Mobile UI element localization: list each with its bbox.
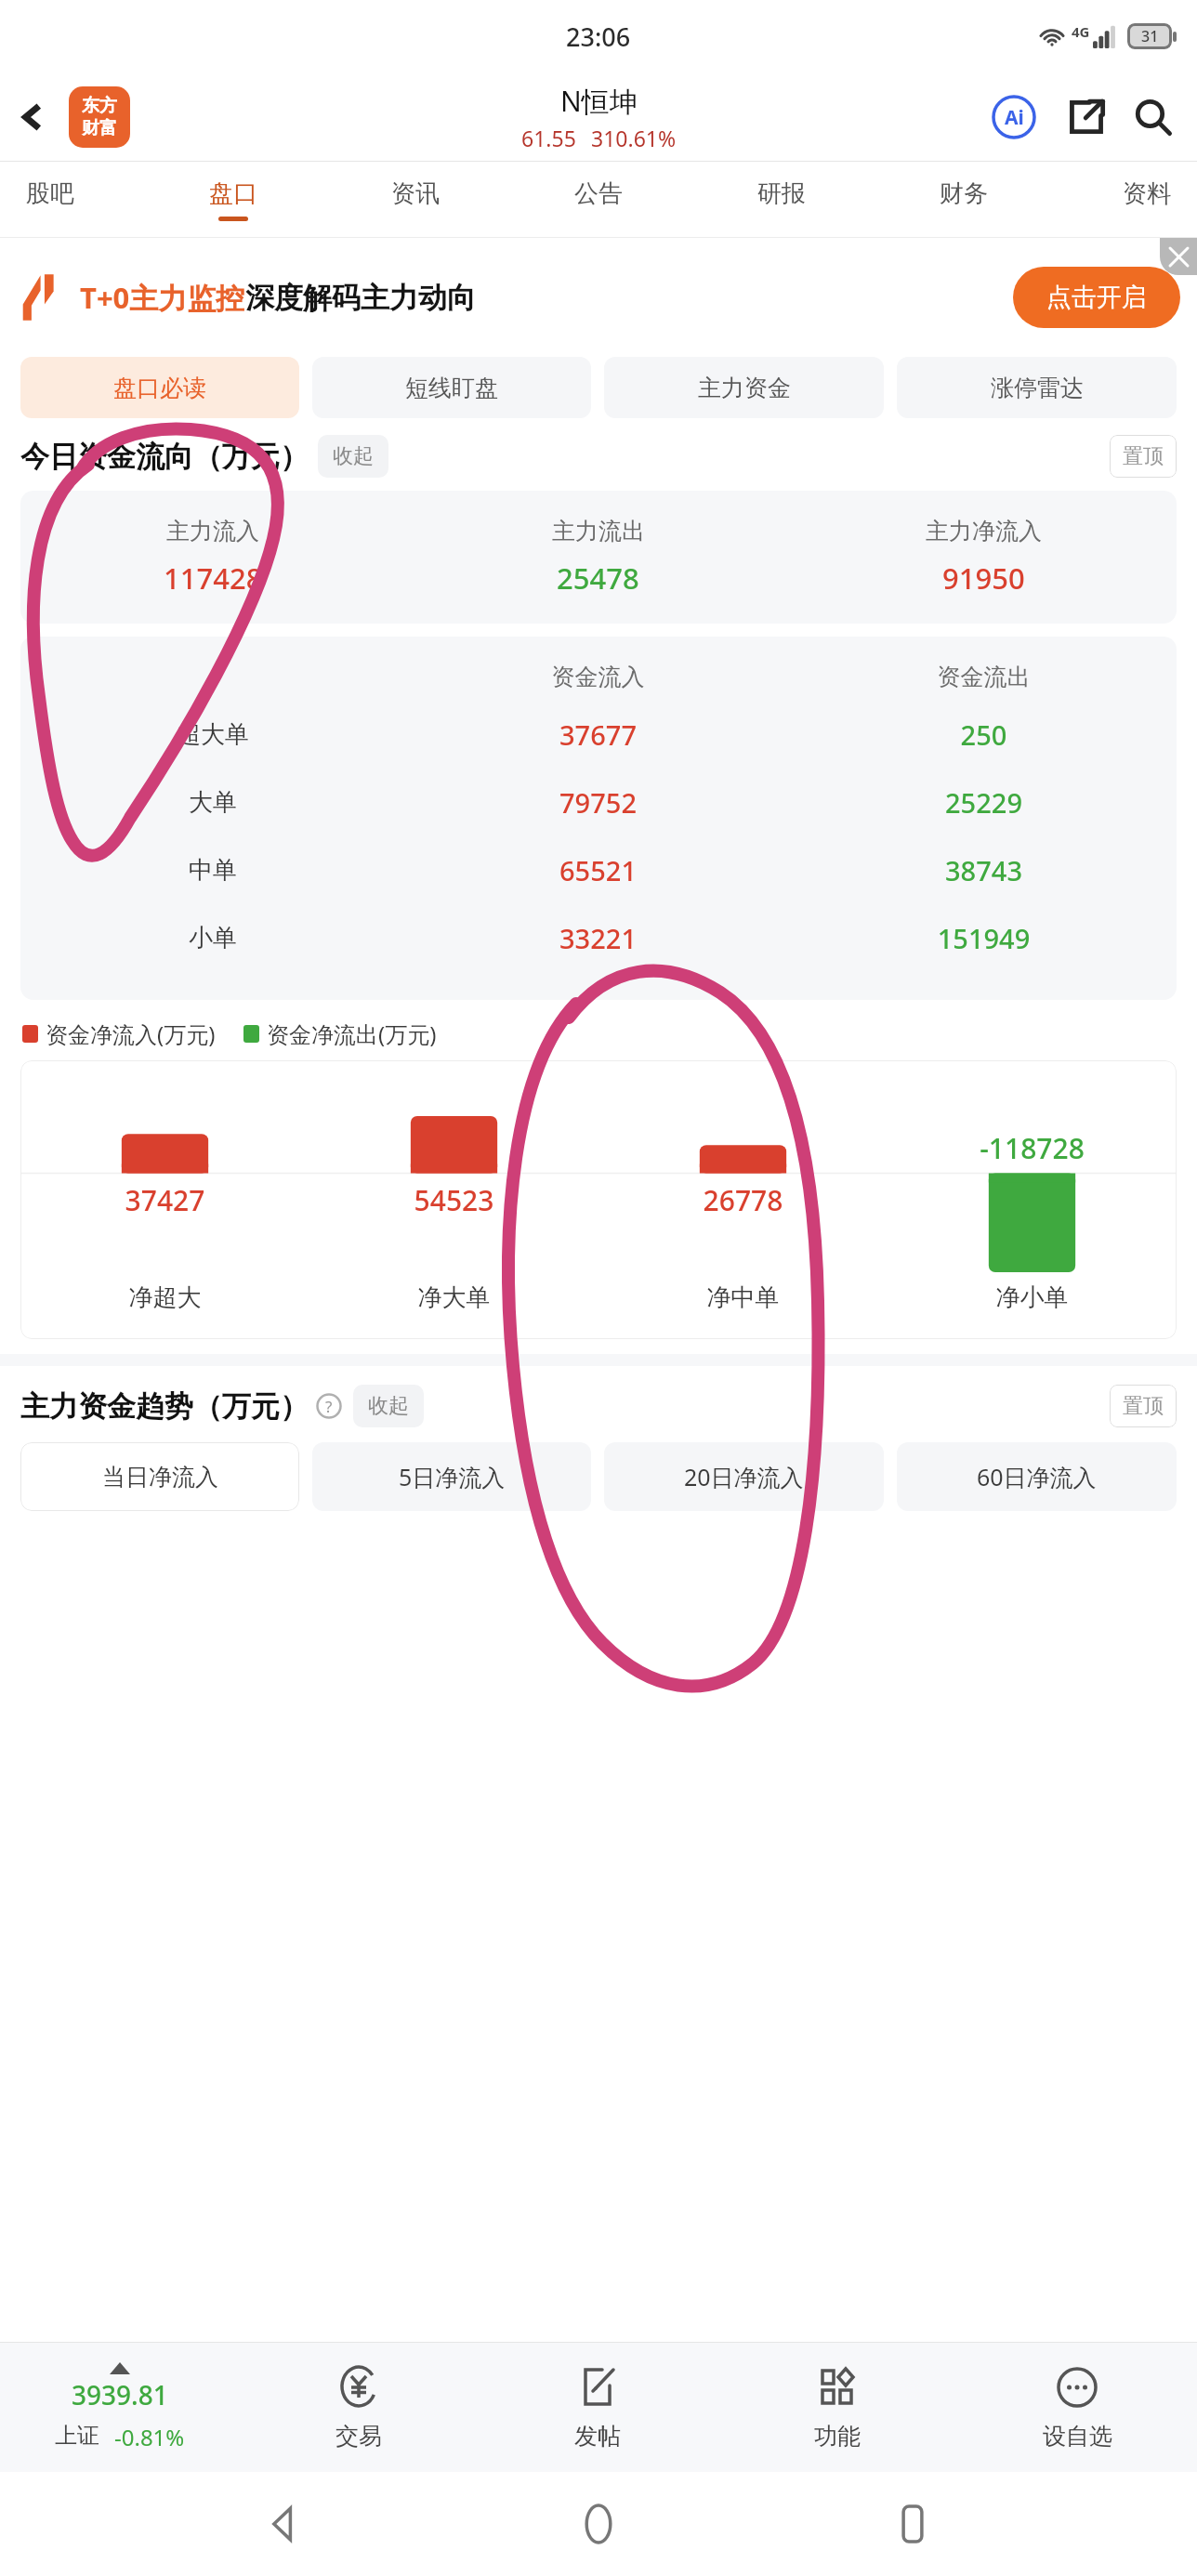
button[interactable]: 5日净流入 bbox=[312, 1442, 591, 1511]
button[interactable]: 置顶 bbox=[1110, 1385, 1177, 1427]
button[interactable]: 关闭广告 bbox=[1160, 238, 1197, 275]
button[interactable]: 公告 bbox=[559, 173, 638, 227]
staticText: 151949 bbox=[791, 920, 1177, 956]
button[interactable]: 盘口必读 bbox=[20, 357, 299, 418]
staticText: 设自选 bbox=[1043, 2422, 1112, 2451]
staticText: 资讯 bbox=[391, 178, 440, 209]
staticText: 主力流入 bbox=[166, 517, 259, 545]
button[interactable]: T+0主力监控 bbox=[20, 238, 1180, 357]
staticText: 资料 bbox=[1123, 178, 1171, 209]
staticText: 25478 bbox=[557, 559, 639, 598]
button[interactable]: 收起 bbox=[353, 1385, 424, 1427]
staticText: 涨停雷达 bbox=[991, 374, 1084, 402]
staticText: 资金流出 bbox=[791, 663, 1177, 691]
button[interactable]: 盘口 bbox=[194, 173, 272, 227]
staticText: 收起 bbox=[368, 1393, 409, 1419]
staticText: -118728 bbox=[888, 1129, 1177, 1167]
staticText: 收起 bbox=[333, 443, 374, 469]
staticText: 91950 bbox=[942, 559, 1025, 598]
staticText: 5日净流入 bbox=[399, 1461, 506, 1492]
button[interactable]: 主力流入 bbox=[20, 491, 1177, 624]
staticText: 3939.81 bbox=[72, 2377, 168, 2412]
staticText: Ai bbox=[1005, 104, 1024, 131]
staticText: 资金净流出(万元) bbox=[267, 1019, 437, 1049]
button[interactable]: 当日净流入 bbox=[20, 1442, 299, 1511]
button[interactable]: 置顶 bbox=[1110, 435, 1177, 478]
button[interactable]: 60日净流入 bbox=[897, 1442, 1177, 1511]
button[interactable]: 主力资金 bbox=[604, 357, 884, 418]
button[interactable]: 超大单 bbox=[20, 701, 1177, 769]
staticText: 37427 bbox=[20, 1181, 309, 1219]
staticText: N恒坤 bbox=[560, 82, 638, 120]
staticText: 置顶 bbox=[1123, 1393, 1164, 1419]
staticText: 超大单 bbox=[177, 719, 249, 750]
button[interactable]: 37427 bbox=[20, 1060, 1177, 1339]
staticText: 大单 bbox=[189, 787, 237, 818]
button[interactable]: 股吧 bbox=[11, 173, 89, 227]
button[interactable]: 小单 bbox=[20, 904, 1177, 972]
staticText: T+0主力监控 bbox=[80, 278, 245, 317]
button[interactable]: Recents bbox=[883, 2494, 942, 2554]
button[interactable]: 资料 bbox=[1108, 173, 1186, 227]
staticText: 38743 bbox=[791, 852, 1177, 888]
staticText: 37677 bbox=[405, 716, 791, 753]
button[interactable]: 发帖 bbox=[478, 2342, 717, 2472]
button[interactable]: Search bbox=[1125, 88, 1182, 146]
button[interactable]: AI助手 bbox=[985, 88, 1043, 146]
staticText: 净大单 bbox=[309, 1282, 598, 1313]
button[interactable]: 功能 bbox=[717, 2342, 957, 2472]
staticText: 小单 bbox=[189, 923, 237, 953]
staticText: 20日净流入 bbox=[684, 1461, 804, 1492]
staticText: 今日资金流向（万元） bbox=[20, 439, 309, 475]
staticText: 公告 bbox=[574, 178, 623, 209]
button[interactable]: Back bbox=[6, 90, 59, 144]
staticText: 交易 bbox=[335, 2422, 382, 2451]
staticText: 净小单 bbox=[888, 1282, 1177, 1313]
staticText: 54523 bbox=[309, 1181, 598, 1219]
button[interactable]: 点击开启 bbox=[1013, 267, 1180, 328]
button[interactable]: 20日净流入 bbox=[604, 1442, 884, 1511]
staticText: 净中单 bbox=[598, 1282, 888, 1313]
staticText: 117428 bbox=[164, 559, 263, 598]
button[interactable]: 帮助 bbox=[314, 1391, 344, 1421]
staticText: 4G bbox=[1072, 22, 1090, 41]
button[interactable]: Back bbox=[255, 2494, 314, 2554]
staticText: 发帖 bbox=[574, 2422, 621, 2451]
staticText: 26778 bbox=[598, 1181, 888, 1219]
staticText: 股吧 bbox=[26, 178, 74, 209]
staticText: 250 bbox=[791, 716, 1177, 753]
staticText: 33221 bbox=[405, 920, 791, 956]
staticText: 盘口 bbox=[209, 178, 257, 209]
staticText: 净超大 bbox=[20, 1282, 309, 1313]
staticText: 主力净流入 bbox=[926, 517, 1042, 545]
staticText: 23:06 bbox=[566, 20, 631, 54]
button[interactable]: 财务 bbox=[925, 173, 1003, 227]
button[interactable]: Share bbox=[1058, 88, 1115, 146]
staticText: 65521 bbox=[405, 852, 791, 888]
staticText: 310.61% bbox=[591, 124, 677, 152]
staticText: 主力资金 bbox=[698, 374, 791, 402]
button[interactable]: 涨停雷达 bbox=[897, 357, 1177, 418]
staticText: 资金流入 bbox=[405, 663, 791, 691]
button[interactable]: 设自选 bbox=[957, 2342, 1197, 2472]
staticText: 东方 bbox=[82, 95, 117, 117]
button[interactable]: 中单 bbox=[20, 836, 1177, 904]
button[interactable]: 收起 bbox=[318, 435, 388, 478]
button[interactable]: Home bbox=[569, 2494, 628, 2554]
button[interactable]: 东方财富 bbox=[69, 86, 130, 148]
staticText: 61.55 bbox=[521, 124, 576, 152]
button[interactable]: 资讯 bbox=[376, 173, 454, 227]
staticText: 主力流出 bbox=[552, 517, 645, 545]
staticText: 财务 bbox=[940, 178, 988, 209]
button[interactable]: 研报 bbox=[743, 173, 821, 227]
staticText: 主力资金趋势（万元） bbox=[20, 1388, 309, 1425]
button[interactable]: 3939.81 bbox=[0, 2342, 239, 2472]
staticText: 功能 bbox=[814, 2422, 861, 2451]
staticText: 当日净流入 bbox=[102, 1463, 218, 1492]
button[interactable]: 交易 bbox=[239, 2342, 478, 2472]
button[interactable]: 大单 bbox=[20, 769, 1177, 836]
button[interactable]: 短线盯盘 bbox=[312, 357, 591, 418]
staticText: 置顶 bbox=[1123, 443, 1164, 469]
staticText: ? bbox=[325, 1396, 333, 1417]
staticText: 上证 bbox=[55, 2422, 99, 2450]
